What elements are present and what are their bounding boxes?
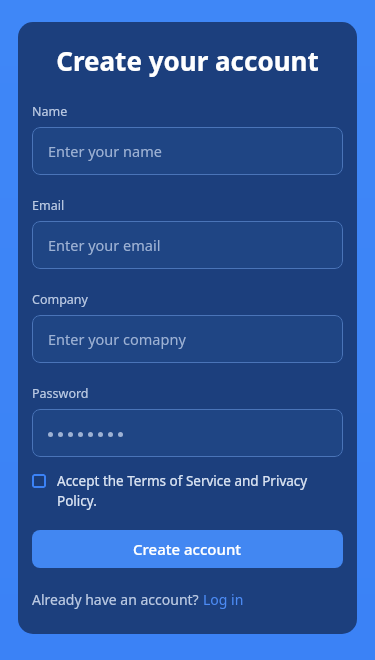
staticText: Already have an account? [32,590,203,609]
button[interactable]: Enter your name [32,127,343,175]
staticText: Password [32,385,89,402]
staticText: Name [32,103,68,120]
staticText: Accept the Terms of Service and Privacy … [57,472,343,510]
button[interactable]: Accept the Terms of Service and Privacy … [32,472,343,510]
button[interactable] [32,409,343,457]
staticText: Create your account [32,43,343,78]
button[interactable]: Enter your comapny [32,315,343,363]
staticText: Email [32,197,65,214]
button[interactable]: Create account [32,530,343,568]
button[interactable]: Enter your email [32,221,343,269]
staticText: Enter your comapny [48,329,186,349]
staticText: Create account [133,539,242,559]
staticText: Enter your name [48,141,162,161]
staticText: Enter your email [48,235,161,255]
button[interactable]: Log in [203,590,244,609]
staticText: Company [32,291,88,308]
